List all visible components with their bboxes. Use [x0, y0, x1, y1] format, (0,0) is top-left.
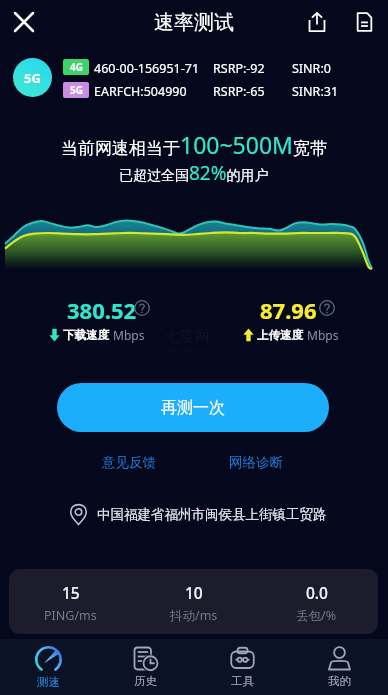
staticText: 上传速度 — [257, 328, 303, 342]
button[interactable]: 历史 — [97, 639, 194, 695]
button[interactable]: 意见反馈 — [96, 448, 162, 477]
staticText: 意见反馈 — [102, 454, 156, 471]
staticText: 工具 — [231, 674, 254, 688]
staticText: 七度网 — [165, 327, 210, 346]
staticText: 速率测试 — [154, 10, 234, 35]
staticText: 再测一次 — [161, 398, 225, 418]
staticText: 丢包/% — [296, 607, 337, 624]
button[interactable]: 我的 — [291, 639, 388, 695]
staticText: 已超过全国82%的用户 — [119, 160, 269, 186]
staticText: 87.96 — [260, 295, 317, 321]
staticText: 4G — [70, 60, 83, 74]
staticText: 15 — [62, 582, 80, 603]
staticText: 历史 — [134, 674, 157, 688]
staticText: RSRP:-65 — [213, 83, 265, 100]
staticText: 测速 — [37, 675, 60, 689]
staticText: 中国福建省福州市闽侯县上街镇工贸路 — [97, 506, 327, 523]
staticText: EARFCH:504990 — [94, 83, 187, 100]
staticText: 抖动/ms — [170, 607, 218, 624]
staticText: 下载速度 — [63, 328, 109, 342]
staticText: SINR:0 — [292, 60, 331, 77]
staticText: Mbps — [113, 327, 145, 343]
staticText: 10 — [185, 582, 203, 603]
staticText: SINR:31 — [292, 83, 339, 100]
button[interactable]: Close — [4, 2, 44, 42]
button[interactable]: 再测一次 — [57, 383, 329, 432]
button[interactable]: Report — [346, 2, 383, 42]
staticText: Mbps — [307, 327, 339, 343]
staticText: 380.52 — [67, 295, 137, 321]
button[interactable]: 网络诊断 — [223, 448, 289, 477]
button[interactable]: Share — [288, 2, 346, 42]
staticText: PING/ms — [44, 607, 97, 624]
staticText: 5G — [24, 69, 41, 87]
staticText: 5G — [70, 83, 83, 97]
staticText: 0.0 — [306, 582, 328, 603]
staticText: 我的 — [328, 674, 351, 688]
staticText: 网络诊断 — [229, 454, 283, 471]
staticText: 当前网速相当于100~500M宽带 — [61, 129, 327, 160]
button[interactable]: 工具 — [194, 639, 291, 695]
staticText: RSRP:-92 — [213, 60, 265, 77]
staticText: 460-00-156951-71 — [94, 60, 200, 77]
button[interactable]: 测速 — [0, 639, 97, 695]
